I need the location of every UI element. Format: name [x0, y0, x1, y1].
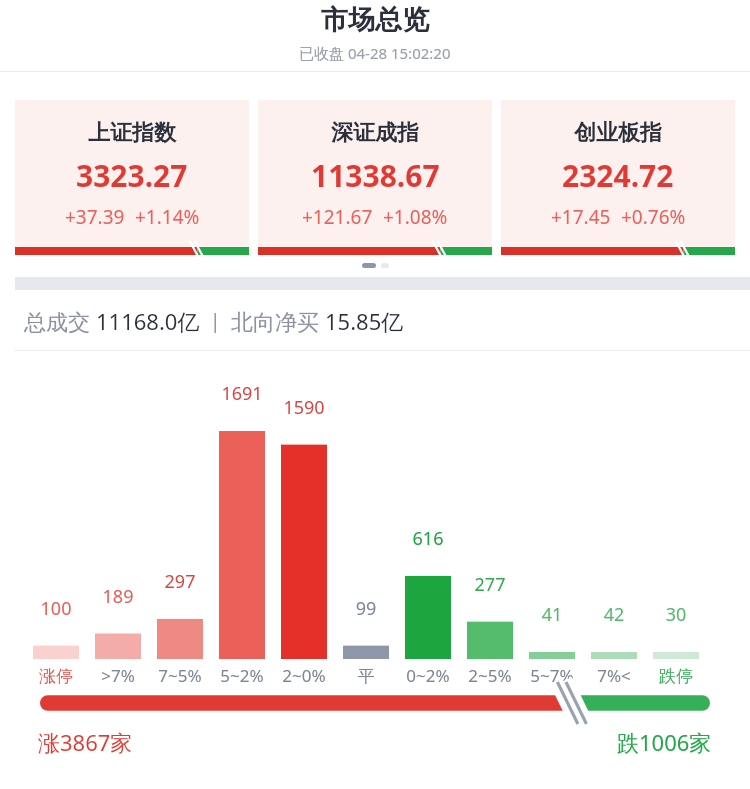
staticText: >7% [87, 664, 149, 687]
staticText: 11338.67 [311, 155, 440, 196]
staticText: 跌1006家 [617, 727, 712, 757]
staticText: 北向净买 [231, 306, 325, 336]
staticText: 42 [583, 602, 645, 627]
button[interactable]: 总成交 [24, 306, 750, 336]
staticText: 1590 [273, 395, 335, 420]
staticText: 已收盘 04-28 15:02:20 [299, 43, 451, 63]
staticText: 创业板指 [574, 119, 662, 147]
button[interactable]: 上证指数 [15, 100, 249, 255]
staticText: | [200, 308, 231, 334]
staticText: 5~7% [521, 664, 583, 687]
button[interactable]: 创业板指 [501, 100, 735, 255]
staticText: +37.39 [65, 204, 125, 230]
staticText: 11168.0亿 [96, 306, 200, 336]
staticText: 7%< [583, 664, 645, 687]
staticText: 1691 [211, 381, 273, 406]
staticText: 99 [335, 596, 397, 621]
staticText: 41 [521, 602, 583, 627]
staticText: +1.14% [135, 204, 200, 230]
staticText: 平 [335, 666, 397, 687]
staticText: 2324.72 [562, 155, 674, 196]
staticText: 15.85亿 [325, 306, 404, 336]
staticText: +0.76% [621, 204, 686, 230]
staticText: 涨3867家 [38, 727, 133, 757]
staticText: 跌停 [645, 666, 707, 687]
staticText: +1.08% [383, 204, 448, 230]
staticText: 189 [87, 584, 149, 609]
staticText: 上证指数 [88, 119, 176, 147]
staticText: 涨停 [25, 666, 87, 687]
staticText: 5~2% [211, 664, 273, 687]
staticText: 0~2% [397, 664, 459, 687]
staticText: 7~5% [149, 664, 211, 687]
staticText: 深证成指 [331, 119, 419, 147]
staticText: 616 [397, 526, 459, 551]
staticText: +17.45 [551, 204, 611, 230]
staticText: 3323.27 [76, 155, 188, 196]
staticText: 2~0% [273, 664, 335, 687]
staticText: 100 [25, 596, 87, 621]
staticText: +121.67 [302, 204, 373, 230]
staticText: 30 [645, 602, 707, 627]
staticText: 2~5% [459, 664, 521, 687]
staticText: 277 [459, 572, 521, 597]
button[interactable] [40, 693, 710, 713]
button[interactable]: 深证成指 [258, 100, 492, 255]
staticText: 总成交 [24, 306, 96, 336]
staticText: 市场总览 [321, 3, 429, 37]
staticText: 297 [149, 569, 211, 594]
